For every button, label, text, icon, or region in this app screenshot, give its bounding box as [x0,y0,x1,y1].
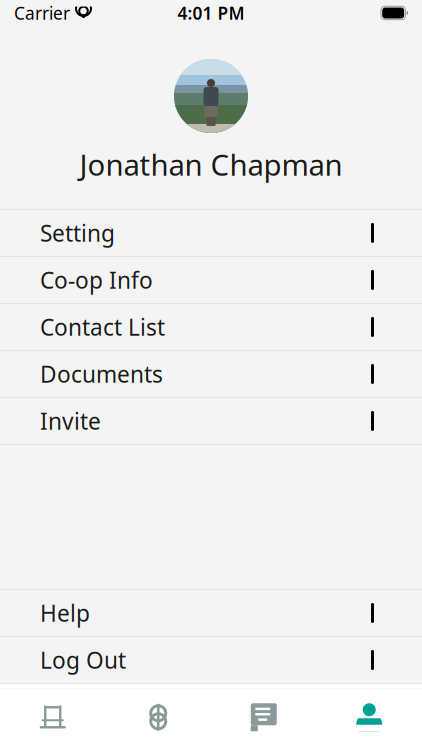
staticText: Setting [40,218,115,248]
staticText: 4:01 PM [177,1,244,24]
button[interactable]: Profile [316,689,422,745]
button[interactable]: Payments [105,689,211,745]
staticText: Contact List [40,312,165,342]
staticText: Documents [40,359,163,389]
staticText: Jonathan Chapman [79,145,342,184]
button[interactable]: Setting [0,210,422,257]
button[interactable]: Log Out [0,637,422,684]
button[interactable]: Help [0,590,422,637]
staticText: Co-op Info [40,265,153,295]
button[interactable]: Messages [211,689,316,745]
button[interactable]: Home [0,689,105,745]
staticText: Log Out [40,645,126,675]
button[interactable]: Contact List [0,304,422,351]
staticText: Carrier [14,1,70,24]
staticText: Help [40,598,90,628]
staticText: Invite [40,406,101,436]
button[interactable]: Co-op Info [0,257,422,304]
button[interactable]: Documents [0,351,422,398]
button[interactable]: Invite [0,398,422,445]
